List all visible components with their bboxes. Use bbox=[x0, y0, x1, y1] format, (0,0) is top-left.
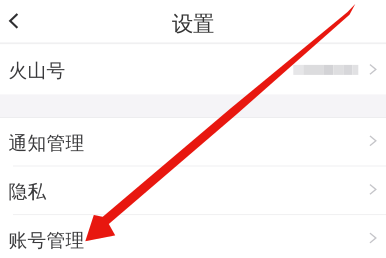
staticText: 设置 bbox=[172, 11, 214, 37]
button[interactable]: 通知管理 bbox=[0, 118, 386, 165]
button[interactable]: Back bbox=[0, 0, 34, 42]
staticText: 通知管理 bbox=[8, 132, 84, 155]
staticText: 火山号 bbox=[8, 59, 65, 82]
button[interactable]: 隐私 bbox=[0, 167, 386, 214]
staticText: 账号管理 bbox=[8, 229, 84, 252]
staticText: 隐私 bbox=[8, 180, 46, 203]
button[interactable]: 火山号 bbox=[0, 44, 386, 94]
button[interactable]: 账号管理 bbox=[0, 215, 386, 258]
